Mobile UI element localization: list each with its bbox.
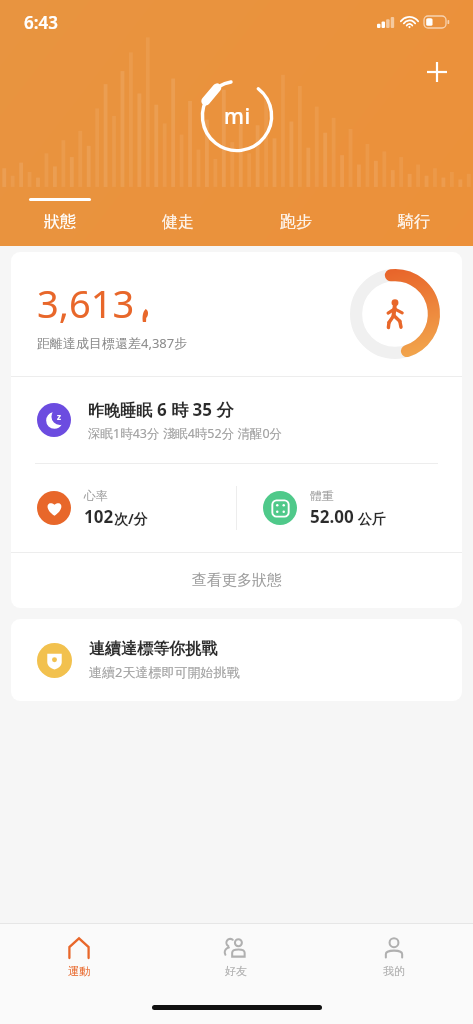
staticText: 查看更多狀態 <box>192 571 282 590</box>
button[interactable]: 跑步 <box>237 198 355 232</box>
button[interactable]: 好友 <box>157 924 315 990</box>
staticText: 3,613 <box>37 277 135 329</box>
button[interactable]: 查看更多狀態 <box>11 553 462 608</box>
button[interactable]: 連續達標等你挑戰 <box>11 619 462 701</box>
staticText: 我的 <box>383 964 405 978</box>
button[interactable]: 我的 <box>315 924 473 990</box>
staticText: 運動 <box>68 964 90 978</box>
button[interactable]: 騎行 <box>355 198 473 232</box>
staticText: 健走 <box>162 212 194 232</box>
staticText: 102 <box>84 505 114 528</box>
button[interactable]: 3,613 <box>11 252 462 376</box>
staticText: 跑步 <box>280 212 312 232</box>
button[interactable]: 運動 <box>0 924 157 990</box>
staticText: 昨晚睡眠 <box>88 399 157 421</box>
staticText: 次/分 <box>114 509 148 528</box>
staticText: 心率 <box>84 488 108 503</box>
staticText: 連續達標等你挑戰 <box>89 639 217 659</box>
staticText: 52.00 <box>310 505 354 528</box>
staticText: mi <box>224 102 251 131</box>
staticText: 體重 <box>310 488 334 503</box>
staticText: 公斤 <box>354 509 386 528</box>
button[interactable]: Mi Band <box>199 78 275 154</box>
staticText: 6:43 <box>24 11 58 34</box>
staticText: 好友 <box>225 964 247 978</box>
staticText: 深眠1時43分 淺眠4時52分 清醒0分 <box>88 425 283 442</box>
button[interactable]: z <box>11 377 462 463</box>
button[interactable]: 健走 <box>119 198 237 232</box>
button[interactable]: 狀態 <box>0 198 119 232</box>
button[interactable]: Add <box>415 50 459 94</box>
staticText: 距離達成目標還差4,387步 <box>37 334 188 352</box>
button[interactable]: 體重 <box>237 464 462 552</box>
staticText: 6 時 35 分 <box>157 398 234 421</box>
staticText: 連續2天達標即可開始挑戰 <box>89 663 240 681</box>
staticText: 狀態 <box>44 212 76 232</box>
staticText: 騎行 <box>398 212 430 232</box>
button[interactable]: 心率 <box>11 464 236 552</box>
staticText: z <box>57 411 61 422</box>
